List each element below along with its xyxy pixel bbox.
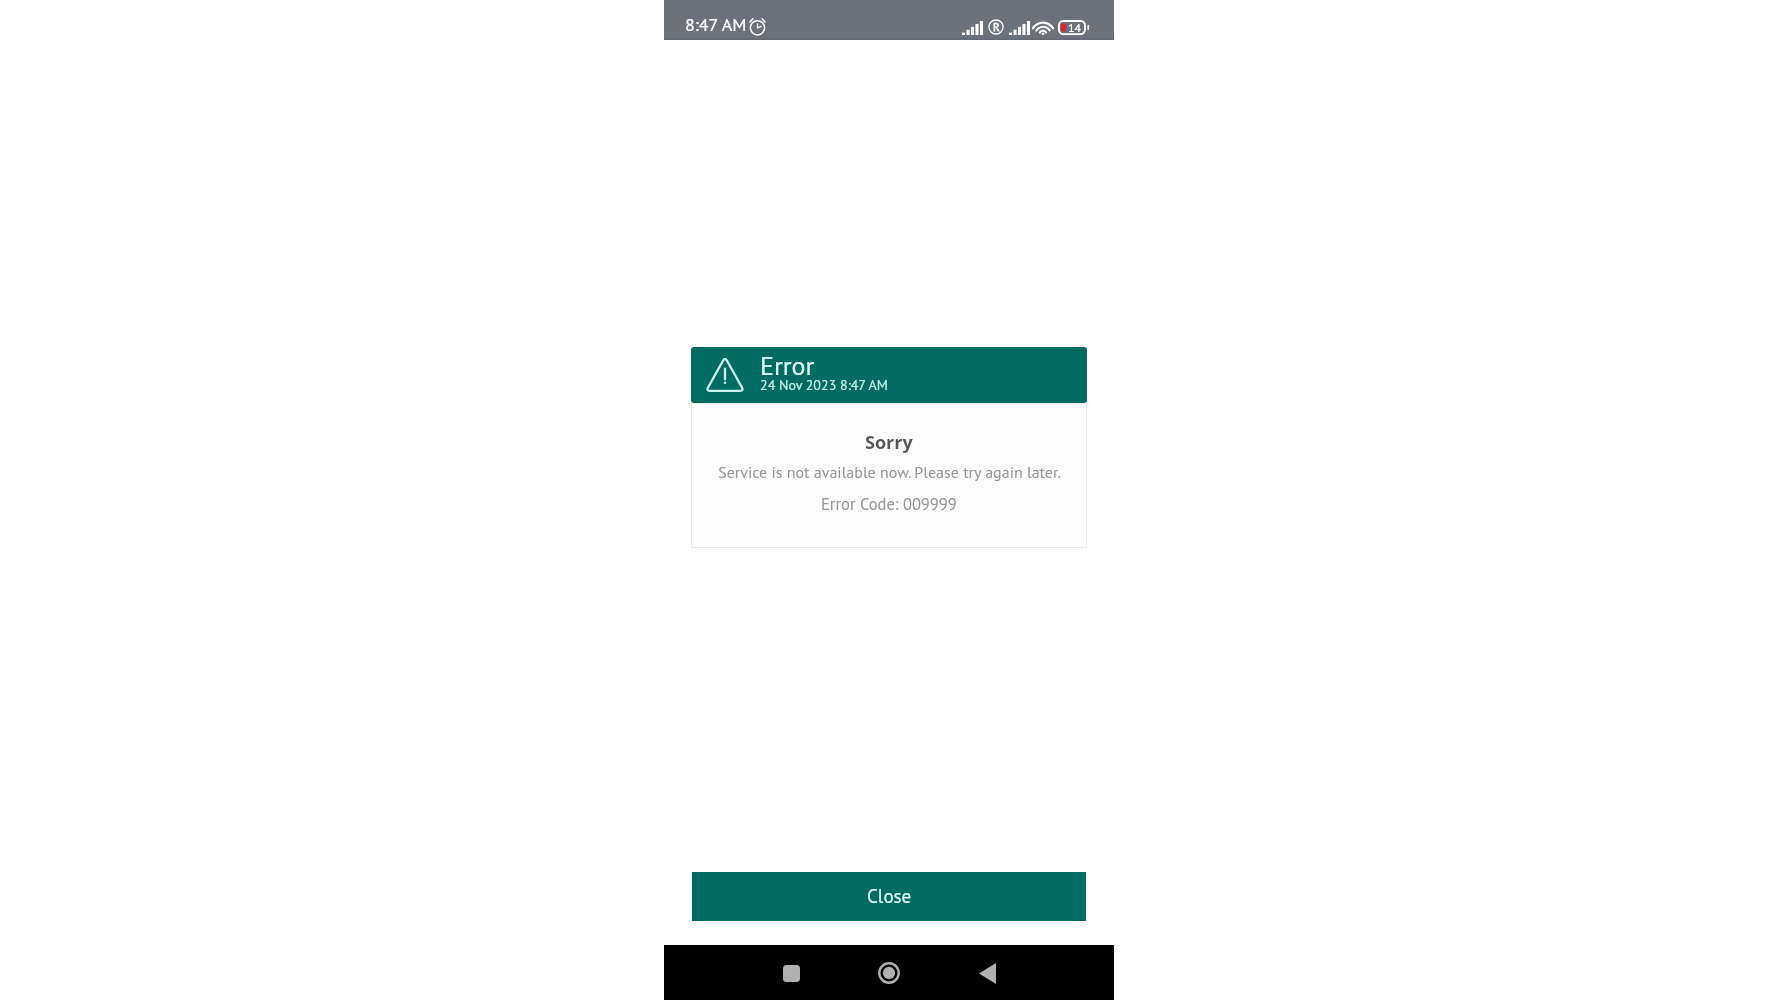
staticText: 14 — [1068, 20, 1082, 35]
button[interactable]: Home — [866, 950, 912, 996]
staticText: Close — [867, 884, 912, 909]
button[interactable]: Close — [692, 872, 1086, 921]
button[interactable]: Back — [964, 950, 1010, 996]
button[interactable]: Recents — [768, 950, 814, 996]
staticText: Service is not available now. Please try… — [718, 462, 1061, 483]
staticText: 8:47 AM — [685, 13, 747, 36]
staticText: Error Code: 009999 — [821, 493, 957, 514]
staticText: 24 Nov 2023 8:47 AM — [760, 376, 888, 394]
staticText: Sorry — [865, 430, 913, 455]
staticText: R — [993, 20, 1000, 34]
staticText: Error — [760, 349, 815, 383]
